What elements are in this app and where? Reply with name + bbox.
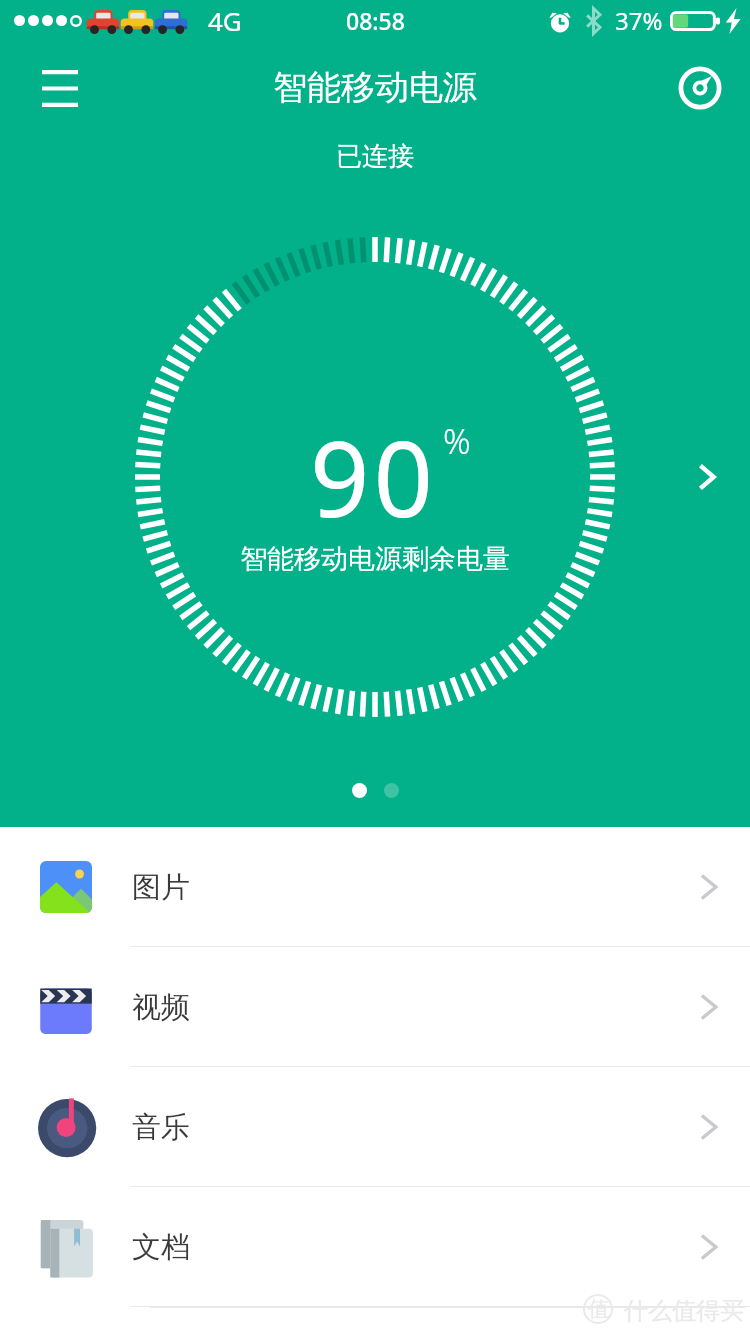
button[interactable]: 文档 (0, 1187, 750, 1307)
staticText: 08:58 (346, 5, 405, 36)
button[interactable]: Device (668, 56, 732, 120)
staticText: 值 (588, 1296, 609, 1322)
button[interactable]: 视频 (0, 947, 750, 1067)
button[interactable]: Page 2 (384, 783, 399, 798)
staticText: 37% (615, 4, 663, 37)
staticText: 图片 (132, 869, 190, 906)
button[interactable]: Next page (676, 446, 738, 508)
button[interactable]: 音乐 (0, 1067, 750, 1187)
staticText: 4G (208, 3, 242, 38)
staticText: 智能移动电源 (273, 66, 477, 109)
staticText: 文档 (132, 1229, 190, 1266)
staticText: 什么值得买 (624, 1296, 744, 1326)
button[interactable]: 图片 (0, 827, 750, 947)
staticText: 视频 (132, 989, 190, 1026)
button[interactable]: Menu (24, 52, 96, 124)
staticText: % (443, 418, 471, 464)
staticText: 智能移动电源剩余电量 (240, 542, 510, 576)
button[interactable]: Page 1 (352, 783, 367, 798)
staticText: 已连接 (336, 140, 414, 173)
staticText: 90 (310, 406, 437, 548)
staticText: 音乐 (132, 1109, 190, 1146)
